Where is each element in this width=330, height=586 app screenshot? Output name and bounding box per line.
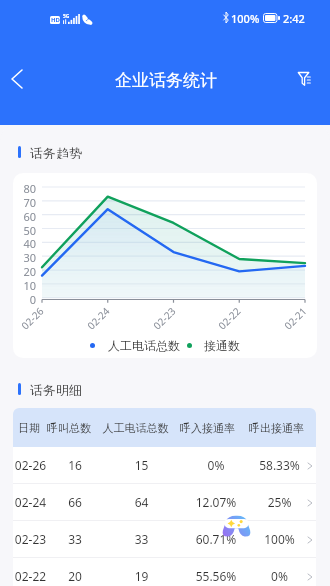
staticText: 02-23	[13, 531, 48, 547]
staticText: 10	[13, 278, 36, 293]
button[interactable]: 02-26	[13, 447, 316, 484]
staticText: 25%	[251, 494, 308, 510]
staticText: 呼入接通率	[178, 421, 237, 435]
staticText: 02-23	[147, 304, 178, 336]
staticText: 5G	[63, 13, 70, 20]
staticText: 人工电话总数	[93, 421, 178, 435]
staticText: 64	[102, 494, 181, 510]
staticText: 16	[48, 457, 102, 473]
staticText: 33	[48, 531, 102, 547]
staticText: 0	[13, 292, 36, 307]
staticText: 话务趋势	[30, 145, 82, 159]
staticText: 呼叫总数	[45, 421, 93, 435]
staticText: 02-22	[212, 304, 243, 336]
staticText: 55.56%	[181, 568, 251, 584]
staticText: 80	[13, 181, 36, 196]
button[interactable]: Game assistant	[222, 515, 251, 537]
staticText: 66	[48, 494, 102, 510]
button[interactable]: 02-24	[13, 484, 316, 521]
button[interactable]: 02-22	[13, 558, 316, 586]
staticText: 02-21	[278, 304, 309, 336]
staticText: 企业话务统计	[1, 70, 330, 91]
staticText: 日期	[13, 421, 45, 435]
staticText: 人工电话总数	[108, 338, 180, 353]
staticText: 0%	[251, 568, 308, 584]
staticText: 12.07%	[181, 494, 251, 510]
staticText: 33	[102, 531, 181, 547]
staticText: 20	[13, 264, 36, 279]
staticText: 02-26	[15, 304, 46, 336]
staticText: HD	[51, 16, 60, 24]
staticText: 0%	[181, 457, 251, 473]
button[interactable]: 02-23	[13, 521, 316, 558]
staticText: 19	[102, 568, 181, 584]
button[interactable]: Filter	[292, 62, 326, 96]
staticText: 30	[13, 250, 36, 265]
staticText: 02-24	[13, 494, 48, 510]
staticText: 02-24	[81, 304, 112, 336]
staticText: 20	[48, 568, 102, 584]
staticText: 02-26	[13, 457, 48, 473]
staticText: 02-22	[13, 568, 48, 584]
staticText: 15	[102, 457, 181, 473]
staticText: 100%	[251, 531, 308, 547]
staticText: 50	[13, 223, 36, 238]
button[interactable]: Back	[0, 62, 36, 96]
staticText: 100%	[231, 11, 260, 26]
staticText: 60	[13, 209, 36, 224]
staticText: 60.71%	[181, 531, 251, 547]
staticText: 40	[13, 236, 36, 251]
staticText: 70	[13, 195, 36, 210]
staticText: 接通数	[204, 338, 240, 353]
staticText: 2:42	[283, 11, 305, 26]
staticText: 58.33%	[251, 457, 308, 473]
staticText: 呼出接通率	[237, 421, 316, 435]
staticText: 话务明细	[30, 382, 82, 396]
